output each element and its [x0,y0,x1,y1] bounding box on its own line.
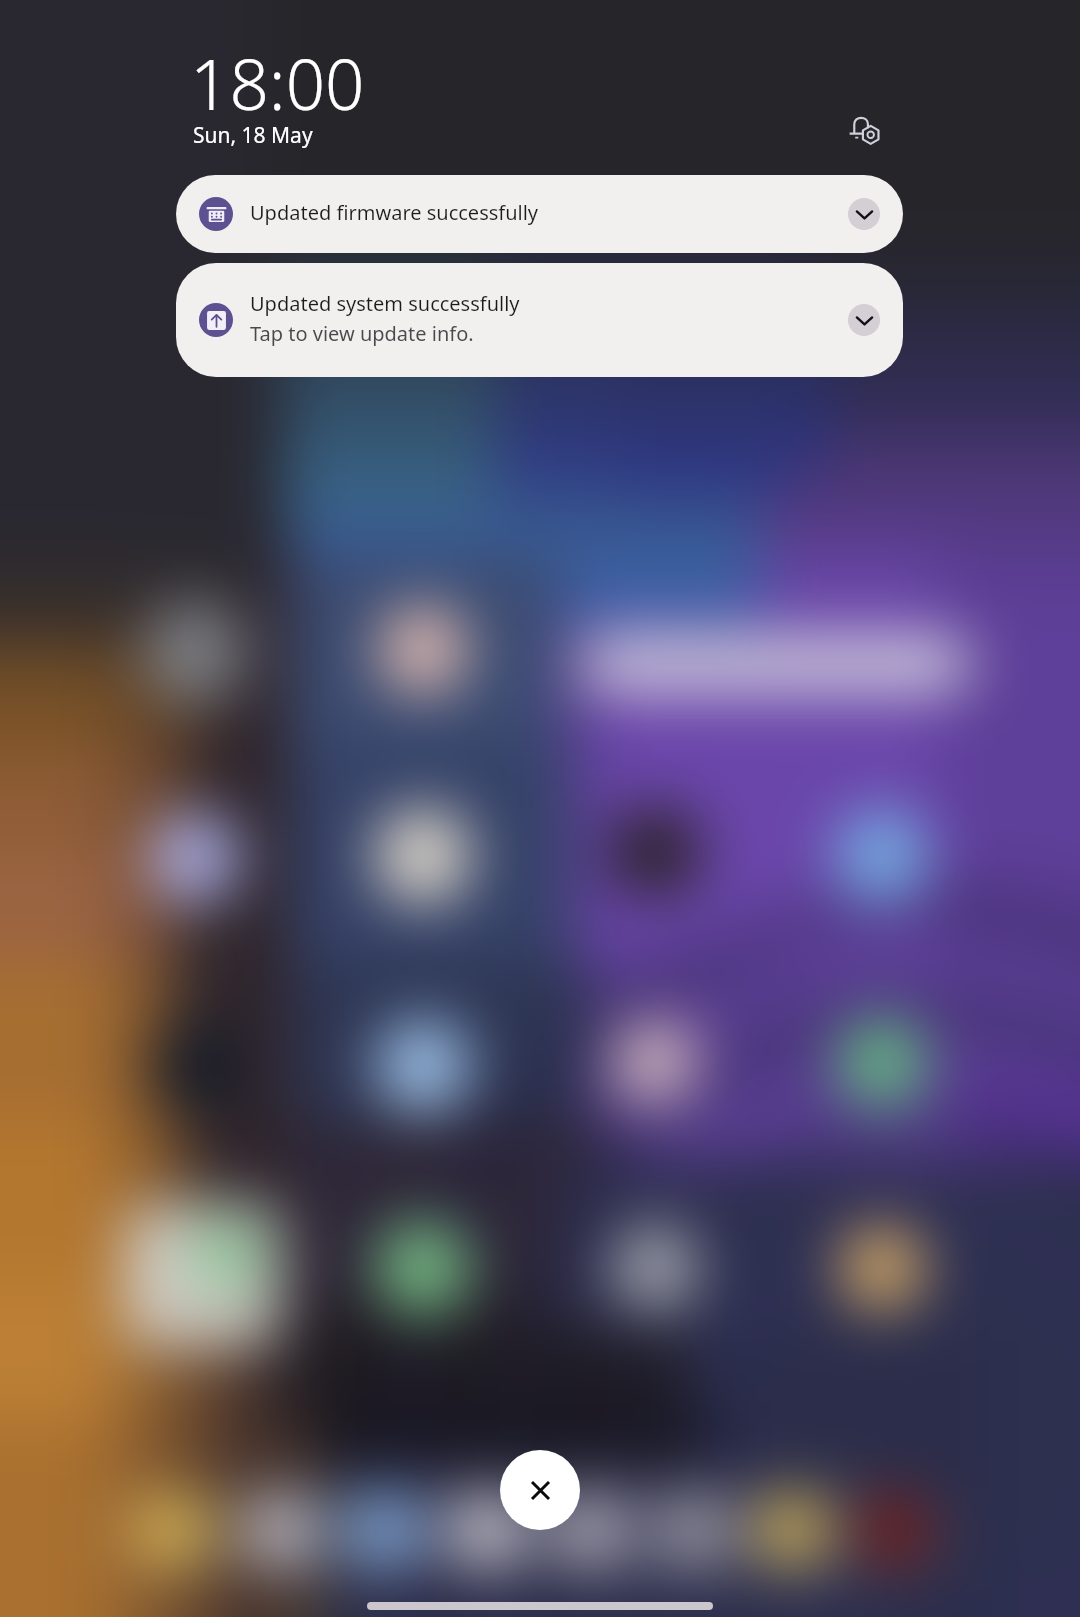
staticText: Sun, 18 May [193,121,313,150]
staticText: Tap to view update info. [250,320,474,347]
staticText: Updated firmware successfully [250,199,539,226]
button[interactable]: Updated system successfully [176,263,903,377]
button[interactable]: Notification settings [834,100,894,160]
staticText: 18:00 [190,36,365,130]
button[interactable]: Expand notification [848,304,880,336]
button[interactable]: Clear all notifications [500,1450,580,1530]
button[interactable]: Updated firmware successfully [176,175,903,253]
staticText: Updated system successfully [250,290,520,317]
button[interactable]: Expand notification [848,198,880,230]
button[interactable]: 18:00 [190,36,370,154]
